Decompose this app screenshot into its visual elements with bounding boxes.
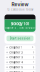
staticText: Review — [11, 2, 28, 7]
staticText: 8 — [33, 66, 34, 69]
staticText: Chapter 3 — [9, 56, 23, 59]
staticText: Biology 101 — [10, 22, 29, 26]
staticText: Chapter 5 — [9, 66, 23, 69]
button[interactable]: Chapter 1 — [4, 45, 35, 50]
staticText: Chapter 1 — [9, 46, 22, 49]
staticText: Chapter 6 — [9, 71, 23, 72]
button[interactable]: Chapter 3 — [4, 55, 35, 60]
button[interactable]: Chapter 4 — [4, 60, 35, 65]
button[interactable]: Start session — [6, 36, 33, 41]
staticText: 5 — [33, 51, 34, 54]
button[interactable]: Chapter 6 — [4, 70, 35, 72]
staticText: 12 cards due today — [7, 8, 33, 11]
button[interactable]: Chapter 2 — [4, 50, 35, 55]
staticText: 4 — [32, 46, 34, 49]
staticText: 7 — [33, 61, 34, 64]
staticText: Chapter 4 · Cell division — [4, 26, 35, 30]
staticText: Start session — [9, 37, 30, 40]
button[interactable]: Chapter 5 — [4, 65, 35, 70]
staticText: Chapter 4 — [9, 61, 23, 64]
staticText: 6 — [33, 56, 34, 59]
staticText: Chapter 2 — [9, 51, 23, 54]
